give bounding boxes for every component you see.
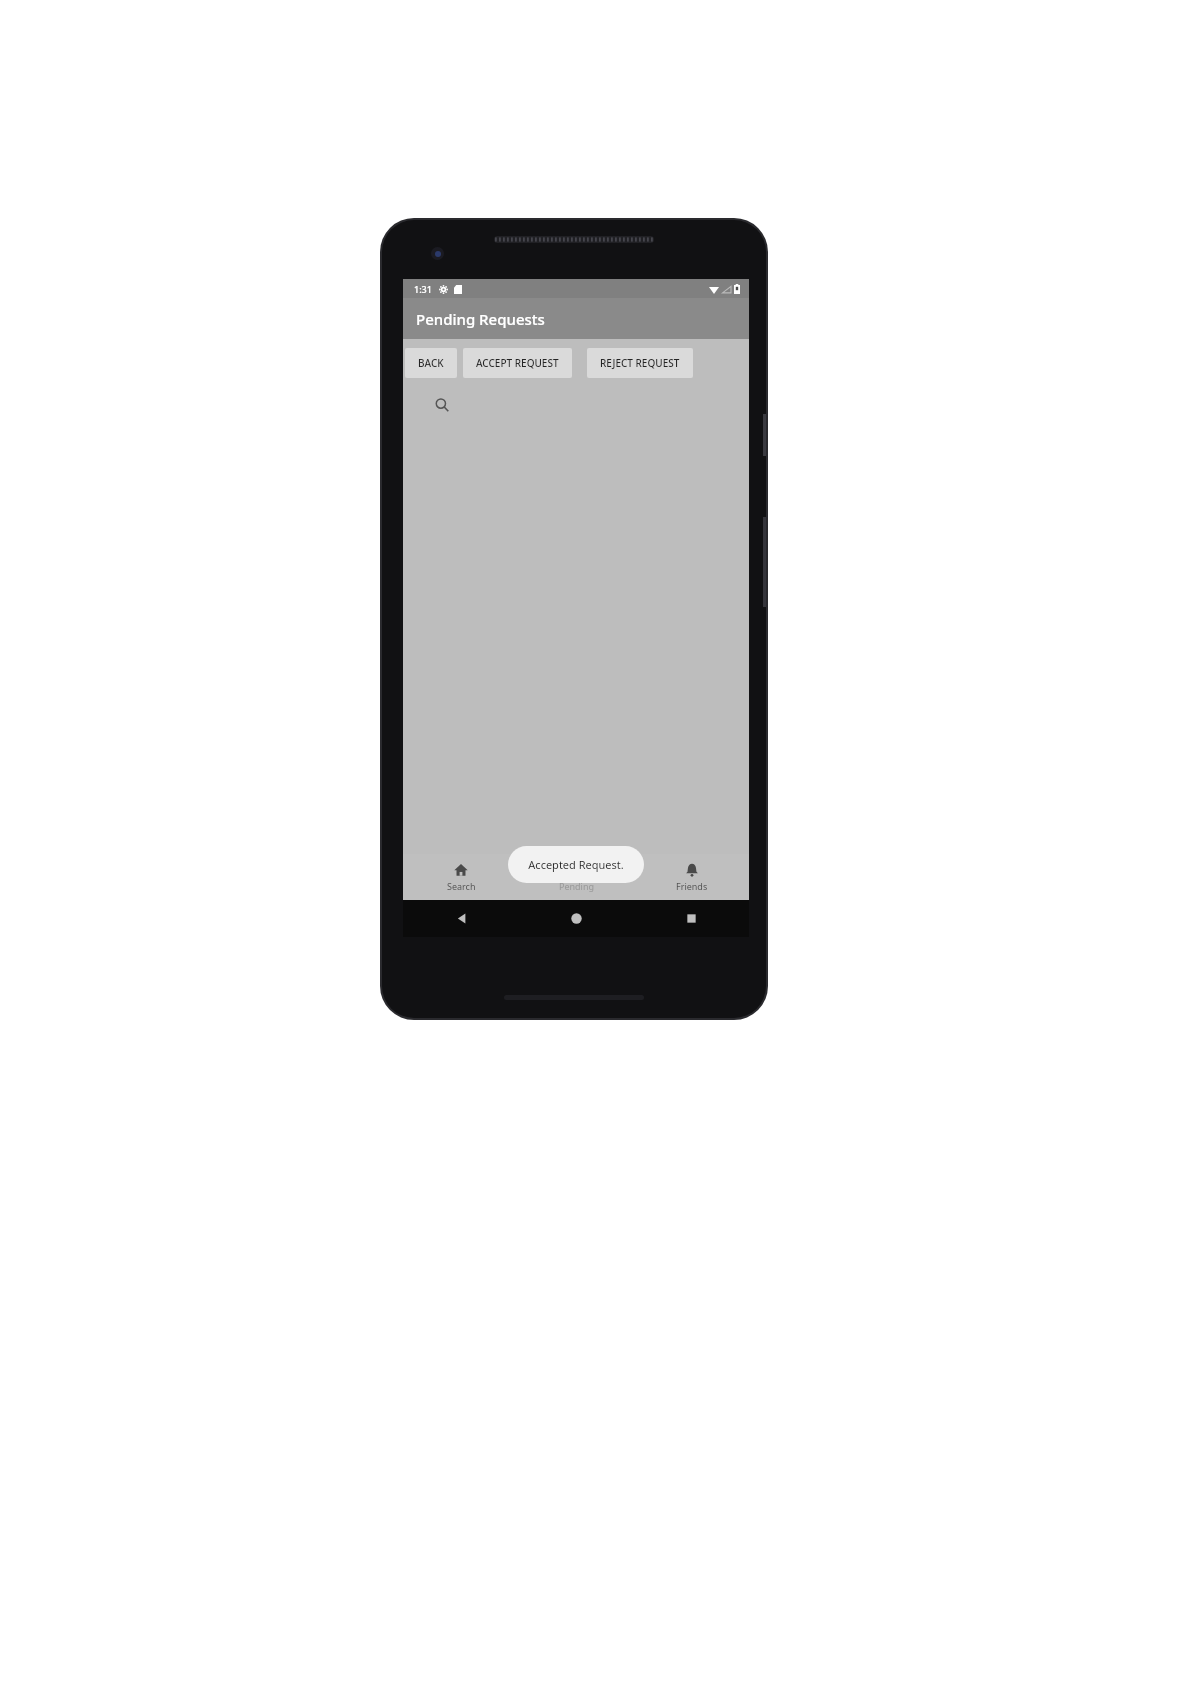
staticText: Accepted Request. [528,857,624,872]
button[interactable]: Pending [519,854,634,900]
staticText: ACCEPT REQUEST [476,356,559,370]
button[interactable]: Search [403,854,519,900]
button[interactable]: Recents [634,900,749,937]
button[interactable]: Friends [634,854,749,900]
staticText: REJECT REQUEST [600,356,680,370]
button[interactable]: Search [429,392,455,418]
staticText: 1:31 [414,283,432,295]
button[interactable]: Home [519,900,634,937]
button[interactable]: BACK [405,348,457,378]
button[interactable]: REJECT REQUEST [587,348,693,378]
staticText: BACK [418,356,444,370]
staticText: Pending [559,880,595,892]
button[interactable]: Back [403,900,519,937]
button[interactable]: ACCEPT REQUEST [463,348,572,378]
staticText: Search [447,880,476,892]
staticText: Pending Requests [416,309,545,329]
staticText: Friends [676,880,708,892]
